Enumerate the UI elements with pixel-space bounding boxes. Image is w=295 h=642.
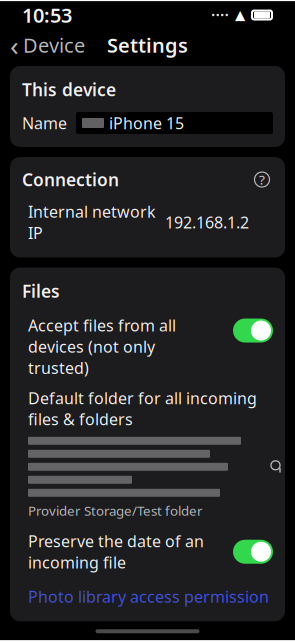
staticText: Default folder for all incoming files & … <box>28 387 257 430</box>
staticText: 192.168.1.2 <box>165 212 249 233</box>
staticText: ? <box>259 171 265 188</box>
staticText: iPhone 15 <box>109 112 184 134</box>
button[interactable]: Photo library access permission <box>22 586 269 607</box>
staticText: Device <box>23 32 85 58</box>
staticText: Accept files from all devices (not only … <box>28 314 176 378</box>
staticText: Internal network IP <box>28 201 156 243</box>
button[interactable]: Accept files from all devices (not only … <box>22 314 273 378</box>
staticText: Settings <box>107 32 188 58</box>
staticText: Provider Storage/Test folder <box>28 502 203 519</box>
button[interactable]: Browse folder <box>265 455 289 479</box>
button[interactable]: Help <box>251 168 273 190</box>
staticText: Name <box>22 112 67 134</box>
staticText: ‹ <box>10 26 19 64</box>
staticText: Preserve the date of an incoming file <box>28 530 204 573</box>
staticText: 10:53 <box>22 2 72 28</box>
staticText: Photo library access permission <box>28 586 269 607</box>
staticText: ▲ <box>235 7 245 22</box>
button[interactable]: Preserve the date of an incoming file <box>22 530 273 573</box>
button[interactable]: ‹ <box>0 30 95 60</box>
staticText: Connection <box>22 168 119 191</box>
button[interactable]: iPhone 15 <box>76 112 273 134</box>
staticText: Files <box>22 279 60 302</box>
staticText: This device <box>22 78 116 101</box>
